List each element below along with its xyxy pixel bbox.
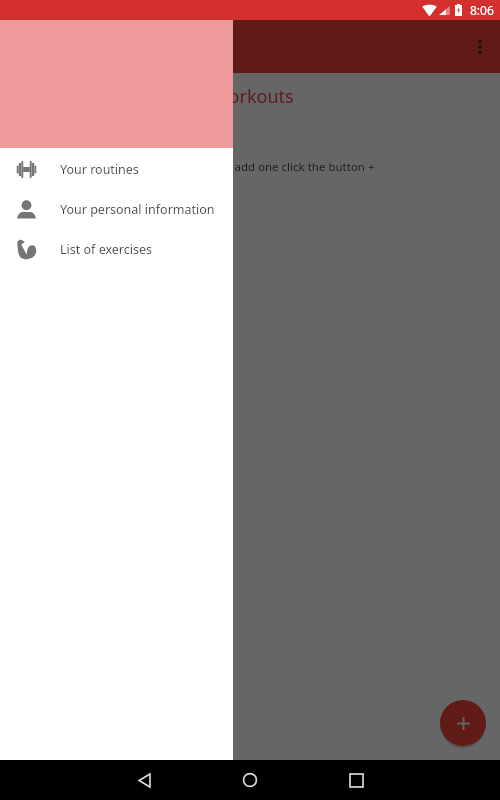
- button[interactable]: List of exercises: [0, 229, 233, 269]
- staticText: 8:06: [470, 2, 494, 18]
- staticText: List of exercises: [60, 241, 153, 258]
- staticText: Your personal information: [60, 201, 215, 218]
- button[interactable]: Your personal information: [0, 189, 233, 229]
- button[interactable]: Your routines: [0, 149, 233, 189]
- staticText: Your routines: [60, 161, 139, 178]
- staticText: No workouts yet, to add one click the bu…: [0, 159, 500, 175]
- staticText: Your workouts: [171, 84, 500, 109]
- button[interactable]: Home: [230, 760, 270, 800]
- button[interactable]: More options: [464, 31, 496, 63]
- button[interactable]: Back: [124, 760, 164, 800]
- button[interactable]: Add workout: [440, 700, 486, 746]
- button[interactable]: Recent apps: [336, 760, 376, 800]
